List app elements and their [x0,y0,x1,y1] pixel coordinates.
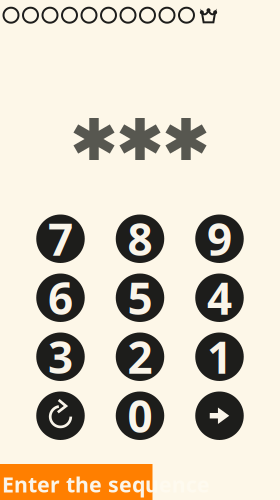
button[interactable]: Submit [195,391,244,440]
staticText: 6 [48,268,73,327]
staticText: 2 [127,327,152,386]
button[interactable]: 9 [195,214,244,263]
staticText: 4 [207,268,232,327]
staticText: Enter the sequence [2,470,210,498]
button[interactable]: Reset [36,391,85,440]
button[interactable]: 7 [36,214,85,263]
staticText: 9 [207,209,232,268]
button[interactable]: 4 [195,273,244,322]
button[interactable]: 3 [36,332,85,381]
button[interactable]: 1 [195,332,244,381]
staticText: 0 [127,386,152,445]
staticText: Enter the sequence [2,470,210,498]
button[interactable]: 2 [116,332,164,381]
staticText: 3 [48,327,73,386]
staticText: 5 [127,268,152,327]
button[interactable]: 6 [36,273,85,322]
staticText: 1 [207,327,232,386]
button[interactable]: 5 [116,273,164,322]
staticText: 8 [127,209,152,268]
button[interactable]: 0 [116,391,164,440]
staticText: 7 [48,209,73,268]
button[interactable]: 8 [116,214,164,263]
